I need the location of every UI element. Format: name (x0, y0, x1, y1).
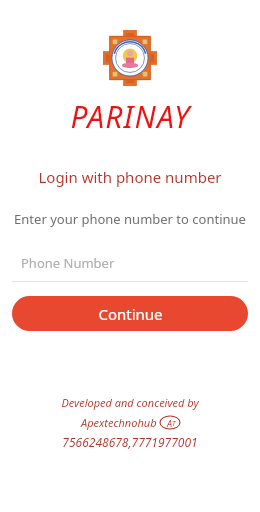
staticText: Phone Number (21, 254, 115, 272)
staticText: A (167, 417, 173, 429)
button[interactable]: Phone Number (12, 250, 248, 282)
button[interactable]: Continue (12, 296, 248, 331)
staticText: Enter your phone number to continue (14, 210, 246, 228)
staticText: PARINAY (70, 96, 191, 137)
staticText: 7566248678,7771977001 (62, 434, 198, 450)
staticText: Login with phone number (38, 167, 222, 187)
staticText: Continue (98, 304, 163, 324)
staticText: Apextechnohub (81, 415, 157, 430)
staticText: T (172, 419, 176, 429)
staticText: Developed and conceived by (61, 395, 199, 410)
